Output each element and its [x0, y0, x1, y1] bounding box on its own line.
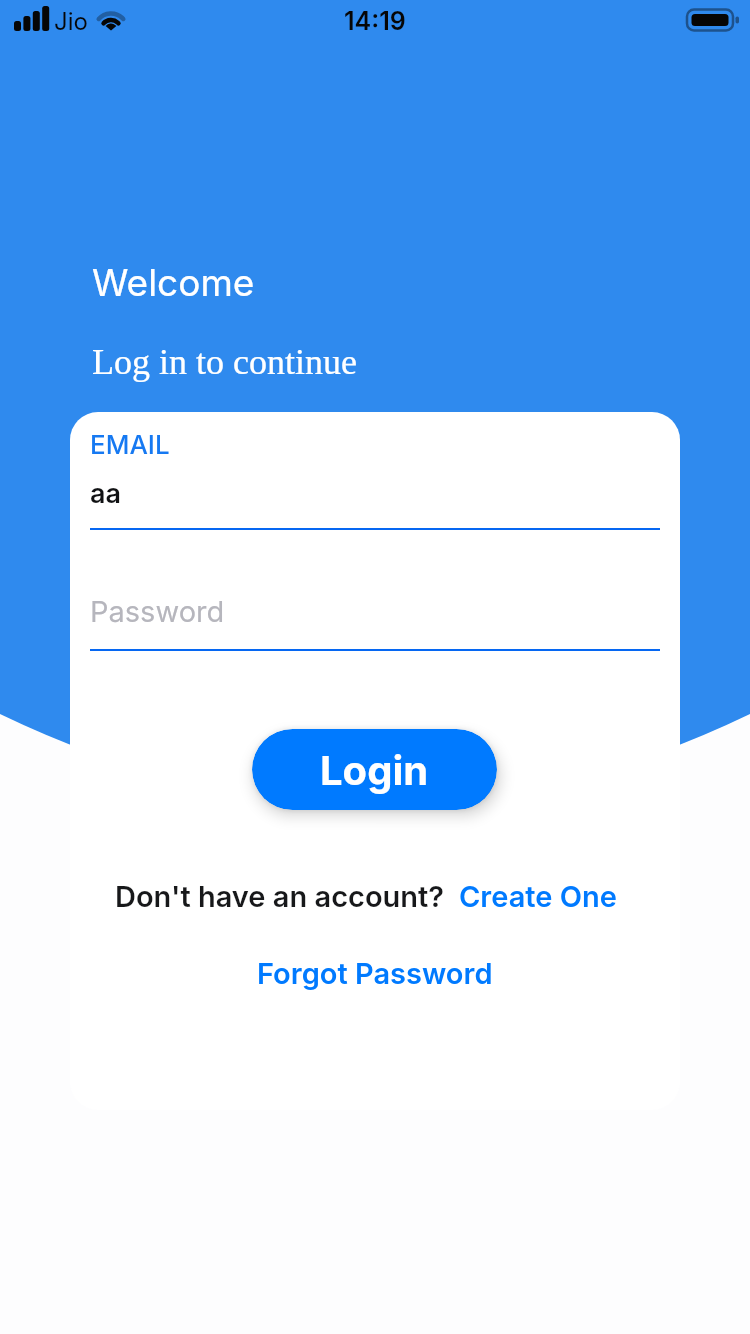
staticText: Log in to continue [92, 342, 357, 382]
staticText: aa [90, 477, 122, 510]
staticText: 14:19 [344, 6, 406, 36]
button[interactable]: Create One [459, 879, 617, 914]
staticText: Create One [459, 879, 617, 914]
staticText: Forgot Password [257, 956, 493, 991]
staticText: EMAIL [90, 429, 170, 460]
button[interactable]: Forgot Password [257, 956, 493, 991]
staticText: Login [320, 746, 429, 794]
button[interactable]: Password [90, 584, 660, 654]
staticText: Jio [54, 7, 88, 36]
staticText: Password [90, 594, 225, 629]
button[interactable]: EMAIL [90, 428, 660, 532]
button[interactable]: Login [252, 729, 497, 810]
staticText: Don't have an account? [115, 879, 459, 914]
staticText: Welcome [92, 260, 255, 305]
